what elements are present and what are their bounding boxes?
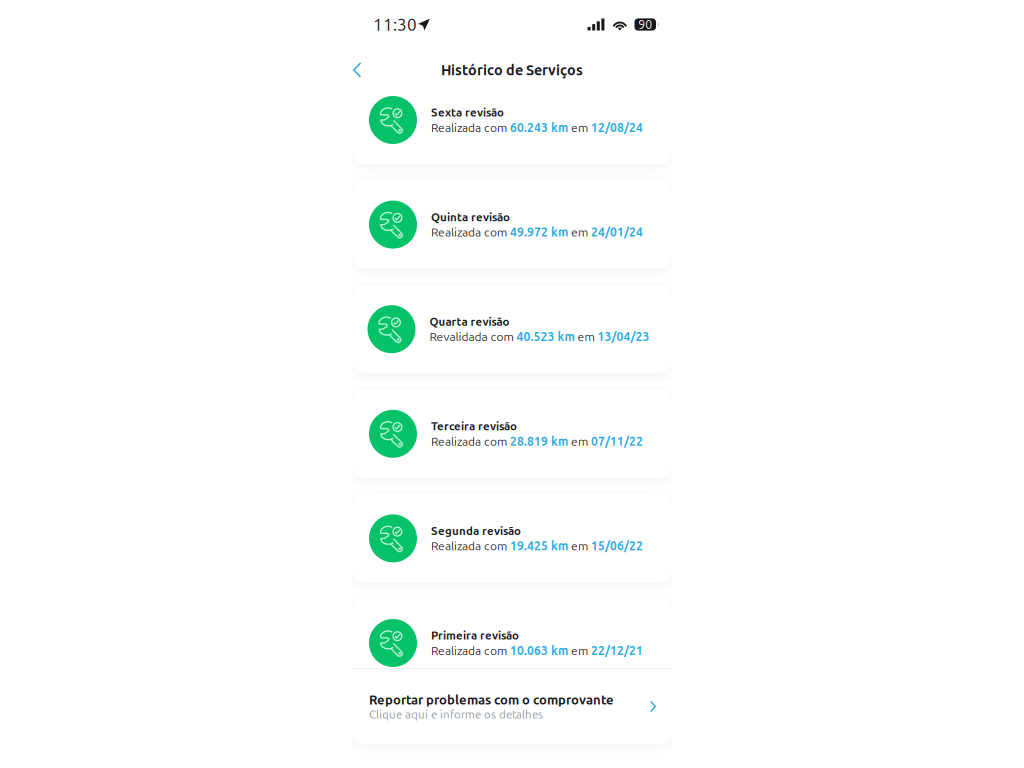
staticText: Quinta revisão [431,210,510,223]
button[interactable]: Primeira revisão [352,599,672,668]
staticText: Realizada com [431,121,510,134]
staticText: 60.243 km [510,121,568,134]
staticText: Realizada com [431,225,510,239]
staticText: em [568,225,591,239]
staticText: 19.425 km [510,539,568,553]
staticText: Sexta revisão [431,106,504,119]
staticText: 22/12/21 [591,644,643,657]
button[interactable]: Quinta revisão [352,181,672,269]
staticText: Reportar problemas com o comprovante [369,692,614,707]
staticText: em [568,434,591,448]
button[interactable]: Reportar problemas com o comprovante [352,669,672,744]
staticText: em [568,121,591,134]
staticText: 40.523 km [516,330,574,343]
staticText: 24/01/24 [591,225,643,239]
staticText: 10.063 km [510,644,568,657]
staticText: em [568,644,591,657]
button[interactable]: Segunda revisão [352,494,672,582]
staticText: Segunda revisão [431,524,521,537]
staticText: 13/04/23 [597,330,649,343]
staticText: 15/06/22 [591,539,643,553]
staticText: Revalidada com [429,330,516,343]
staticText: Quarta revisão [429,315,509,328]
staticText: Clique aqui e informe os detalhes [369,708,543,721]
staticText: Realizada com [431,539,510,553]
staticText: Terceira revisão [431,420,517,432]
staticText: Histórico de Serviços [441,62,583,78]
button[interactable]: Quarta revisão [352,285,672,373]
staticText: em [568,539,591,553]
staticText: 11:30 [373,15,417,34]
staticText: 90 [638,18,652,31]
button[interactable]: Terceira revisão [352,390,672,478]
button[interactable]: Voltar [352,56,368,84]
staticText: Realizada com [431,644,510,657]
staticText: Realizada com [431,434,510,448]
staticText: 12/08/24 [591,121,643,134]
button[interactable]: Sexta revisão [352,76,672,164]
staticText: 28.819 km [510,434,568,448]
staticText: 07/11/22 [591,434,643,448]
staticText: em [574,330,597,343]
staticText: Primeira revisão [431,629,519,642]
staticText: 49.972 km [510,225,568,239]
